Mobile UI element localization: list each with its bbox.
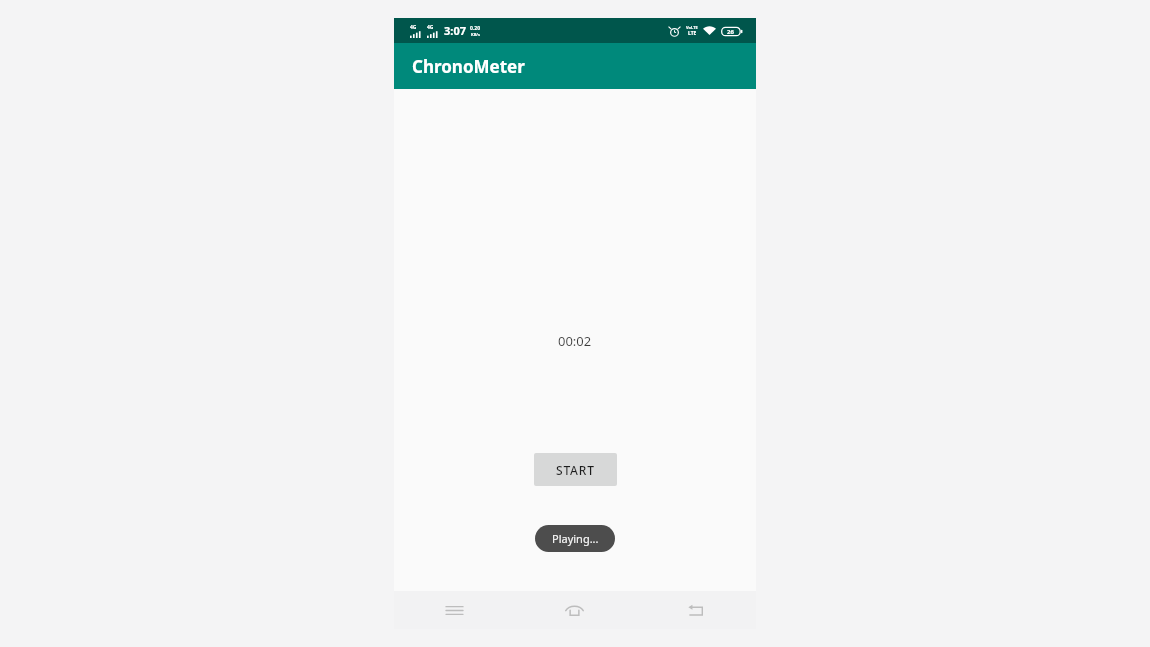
button[interactable]: Recent apps <box>394 591 514 629</box>
staticText: Playing... <box>552 531 599 546</box>
button[interactable]: Back <box>635 591 756 629</box>
staticText: LTE <box>688 30 697 37</box>
staticText: 00:02 <box>558 332 592 350</box>
staticText: 0.20 <box>470 25 480 32</box>
staticText: KB/s <box>471 32 480 37</box>
staticText: ChronoMeter <box>412 55 525 78</box>
staticText: START <box>556 462 595 478</box>
staticText: 4G <box>410 24 417 31</box>
staticText: 26 <box>727 28 734 36</box>
button[interactable]: Home <box>514 591 635 629</box>
staticText: 4G <box>427 24 434 31</box>
staticText: VoLTE <box>686 25 698 30</box>
staticText: 3:07 <box>444 23 466 38</box>
button[interactable]: START <box>534 453 617 486</box>
